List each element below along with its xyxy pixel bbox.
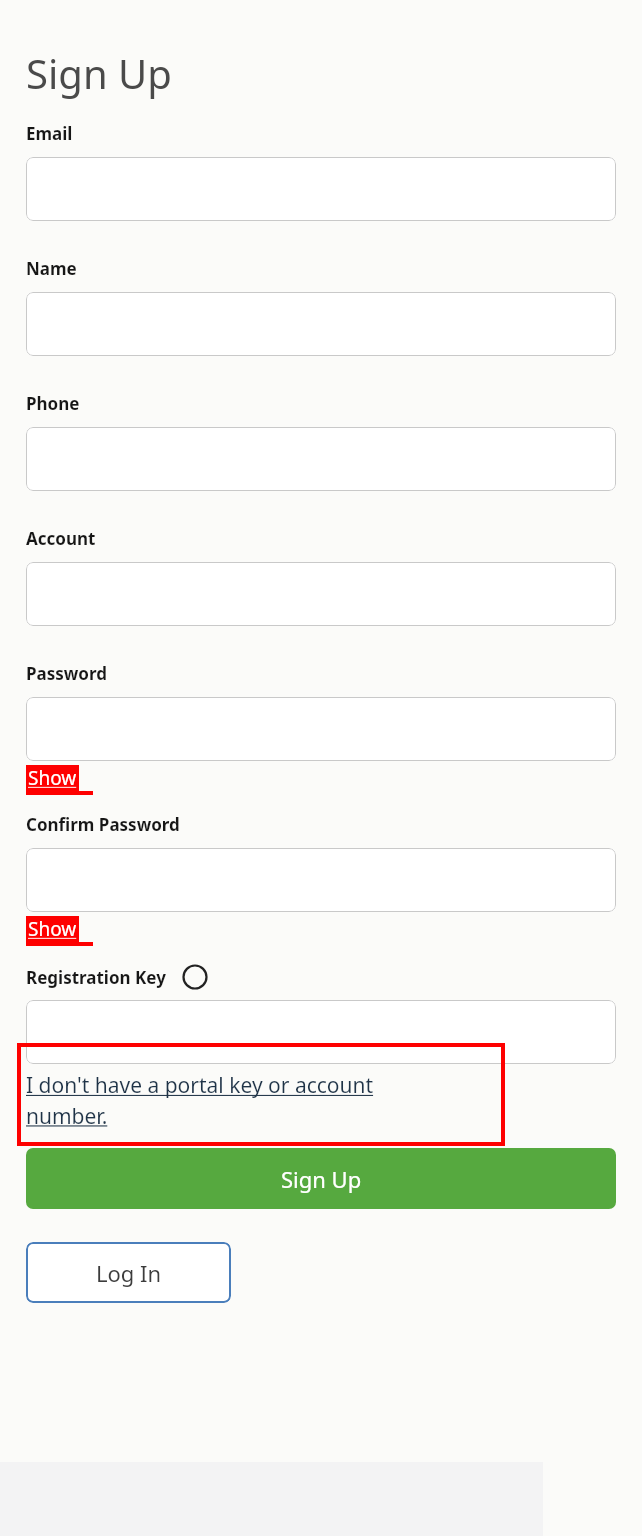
staticText: Show: [28, 765, 77, 791]
staticText: Log In: [96, 1258, 162, 1288]
button[interactable]: [26, 157, 616, 221]
button[interactable]: Log In: [26, 1242, 231, 1303]
staticText: Account: [26, 527, 96, 550]
button[interactable]: I don't have a portal key or account num…: [26, 1071, 374, 1130]
button[interactable]: Help about registration key: [182, 964, 208, 990]
staticText: Email: [26, 122, 73, 145]
button[interactable]: [26, 697, 616, 761]
staticText: Registration Key: [26, 966, 166, 989]
button[interactable]: [26, 427, 616, 491]
staticText: Show: [28, 916, 77, 942]
staticText: Sign Up: [26, 46, 172, 100]
staticText: Sign Up: [281, 1164, 362, 1194]
staticText: Confirm Password: [26, 813, 180, 836]
button[interactable]: [26, 848, 616, 912]
button[interactable]: [26, 292, 616, 356]
button[interactable]: [26, 1000, 616, 1064]
staticText: I don't have a portal key or account num…: [26, 1071, 374, 1130]
button[interactable]: Show: [26, 765, 93, 795]
button[interactable]: [26, 562, 616, 626]
staticText: Password: [26, 662, 107, 685]
button[interactable]: Sign Up: [26, 1148, 616, 1209]
staticText: Name: [26, 257, 77, 280]
button[interactable]: Show: [26, 916, 93, 946]
staticText: Phone: [26, 392, 80, 415]
